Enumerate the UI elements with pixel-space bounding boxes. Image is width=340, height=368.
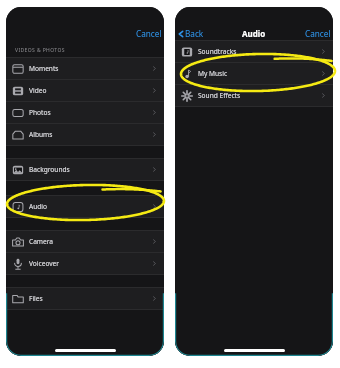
staticText: My Music — [198, 69, 228, 78]
staticText: Sound Effects — [198, 91, 241, 100]
button[interactable]: Video — [6, 80, 164, 101]
button[interactable]: Albums — [6, 124, 164, 145]
button[interactable]: Moments — [6, 58, 164, 79]
staticText: Voiceover — [29, 259, 60, 268]
staticText: Backgrounds — [29, 165, 70, 174]
staticText: Video — [29, 86, 47, 95]
button[interactable]: Files — [6, 288, 164, 309]
button[interactable]: Audio — [6, 196, 164, 217]
button[interactable]: Photos — [6, 102, 164, 123]
staticText: Cancel — [305, 28, 331, 39]
staticText: Audio — [242, 28, 266, 39]
staticText: Camera — [29, 237, 54, 246]
button[interactable]: Camera — [6, 231, 164, 252]
staticText: Moments — [29, 64, 59, 73]
staticText: Photos — [29, 108, 51, 117]
button[interactable]: Cancel — [301, 24, 333, 43]
button[interactable]: Cancel — [132, 24, 164, 43]
staticText: VIDEOS & PHOTOS — [15, 47, 65, 54]
button[interactable]: Voiceover — [6, 253, 164, 274]
staticText: Files — [29, 294, 43, 303]
staticText: Cancel — [136, 28, 162, 39]
staticText: Audio — [29, 202, 48, 211]
button[interactable]: Backgrounds — [6, 159, 164, 180]
staticText: Back — [185, 28, 204, 39]
staticText: Soundtracks — [198, 47, 237, 56]
staticText: Albums — [29, 130, 53, 139]
button[interactable]: Soundtracks — [175, 41, 333, 62]
button[interactable]: Sound Effects — [175, 85, 333, 106]
button[interactable]: My Music — [175, 63, 333, 84]
button[interactable]: Back — [175, 24, 207, 43]
